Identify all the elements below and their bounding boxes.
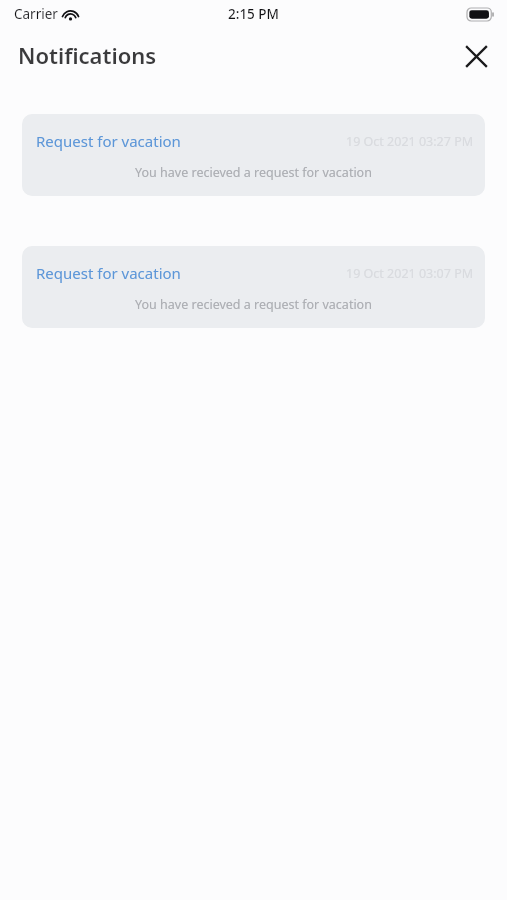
- staticText: 19 Oct 2021 03:07 PM: [346, 265, 474, 282]
- button[interactable]: Close: [456, 36, 496, 76]
- staticText: You have recieved a request for vacation: [135, 164, 372, 181]
- staticText: Request for vacation: [36, 263, 181, 283]
- button[interactable]: Request for vacation: [22, 114, 485, 196]
- staticText: Carrier: [14, 5, 58, 23]
- button[interactable]: Request for vacation: [22, 246, 485, 328]
- staticText: You have recieved a request for vacation: [135, 296, 372, 313]
- staticText: Request for vacation: [36, 131, 181, 151]
- staticText: 2:15 PM: [228, 5, 279, 23]
- staticText: 19 Oct 2021 03:27 PM: [346, 133, 474, 150]
- staticText: Notifications: [18, 40, 157, 70]
